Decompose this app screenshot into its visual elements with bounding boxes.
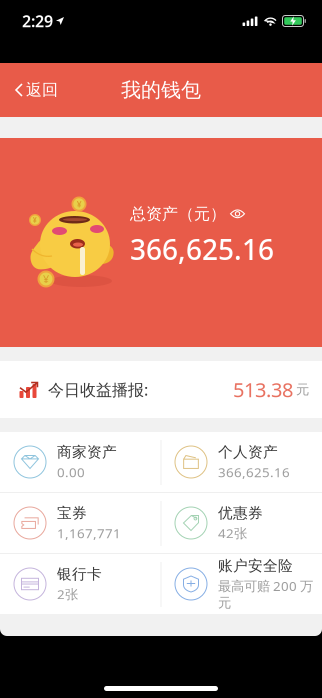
staticText: 宝券 <box>57 504 87 522</box>
staticText: 今日收益播报: <box>48 379 148 400</box>
button[interactable]: 今日收益播报: <box>0 361 322 418</box>
staticText: 2:29 <box>22 10 53 32</box>
staticText: 我的钱包 <box>121 78 201 102</box>
button[interactable]: 优惠券 <box>161 493 322 553</box>
button[interactable]: 个人资产 <box>161 432 322 492</box>
staticText: 总资产（元） <box>130 204 226 224</box>
staticText: 1,167,771 <box>57 524 121 542</box>
staticText: 返回 <box>26 80 58 100</box>
staticText: 银行卡 <box>57 565 102 583</box>
button[interactable]: 宝券 <box>0 493 161 553</box>
staticText: 2张 <box>57 585 78 603</box>
staticText: 账户安全险 <box>218 557 293 575</box>
staticText: 366,625.16 <box>130 231 274 268</box>
staticText: 最高可赔 200 万元 <box>218 577 313 611</box>
staticText: 513.38 <box>233 376 293 403</box>
staticText: 个人资产 <box>218 443 278 461</box>
staticText: 366,625.16 <box>218 463 290 481</box>
button[interactable]: 账户安全险 <box>161 554 322 614</box>
staticText: 商家资产 <box>57 443 117 461</box>
staticText: ¥ <box>76 198 81 210</box>
button[interactable]: 银行卡 <box>0 554 161 614</box>
staticText: 42张 <box>218 524 247 542</box>
staticText: 元 <box>296 381 309 398</box>
staticText: ¥ <box>32 215 37 225</box>
button[interactable]: 商家资产 <box>0 432 161 492</box>
staticText: 0.00 <box>57 463 85 481</box>
staticText: 优惠券 <box>218 504 263 522</box>
staticText: ¥ <box>43 272 49 286</box>
button[interactable]: 返回 <box>0 63 68 117</box>
